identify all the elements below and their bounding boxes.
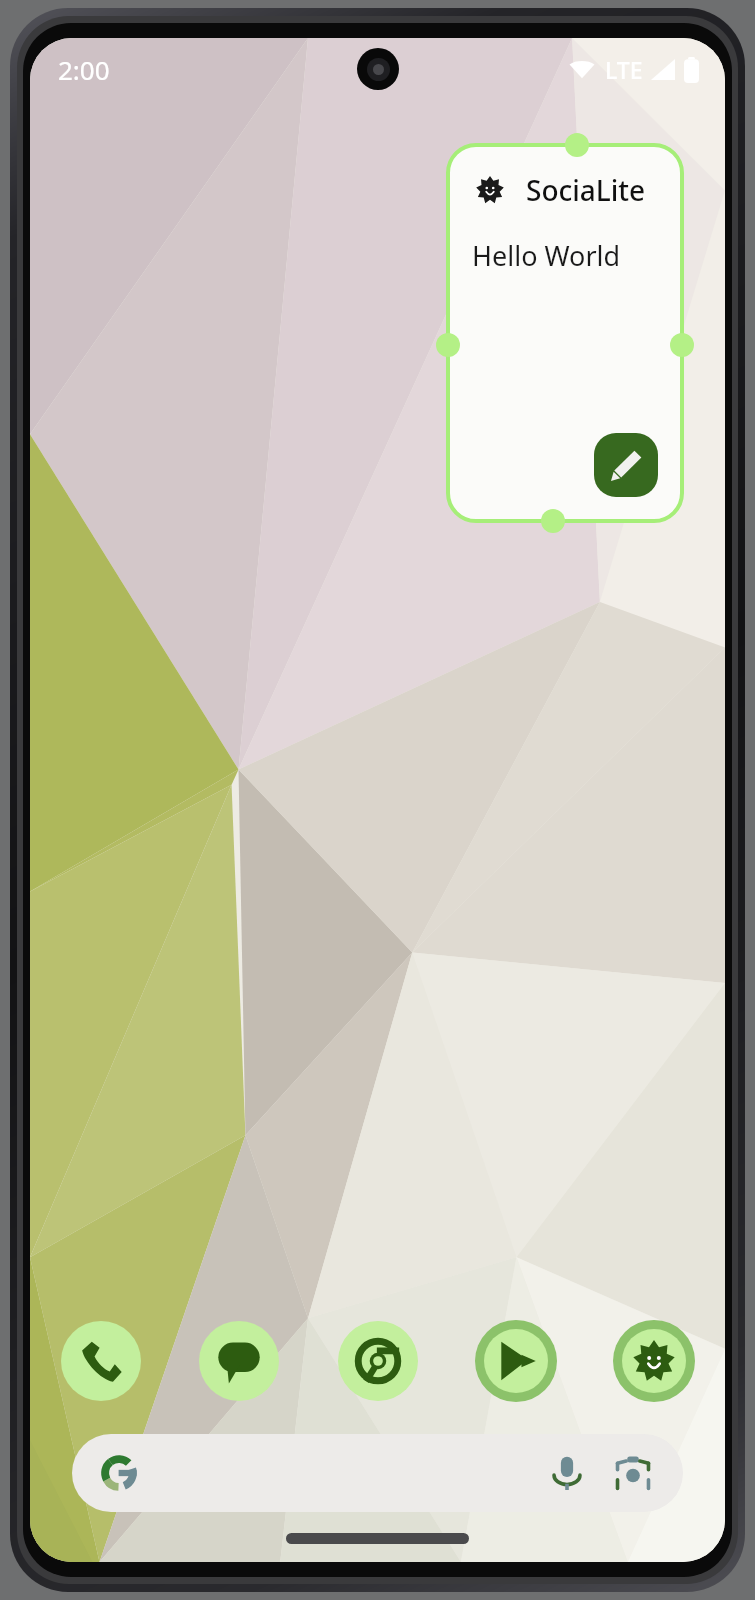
staticText: LTE <box>605 54 643 85</box>
button[interactable]: Voice search <box>72 1434 683 1512</box>
button[interactable]: Google Lens <box>607 1447 659 1499</box>
button[interactable]: Compose <box>594 433 658 497</box>
button[interactable]: SociaLite <box>611 1318 697 1404</box>
button[interactable]: Play Store <box>473 1318 559 1404</box>
button[interactable]: Voice search <box>541 1447 593 1499</box>
staticText: SociaLite <box>526 171 646 209</box>
button[interactable]: Messages <box>196 1318 282 1404</box>
staticText: 2:00 <box>58 52 110 87</box>
button[interactable]: Phone <box>58 1318 144 1404</box>
button[interactable]: SociaLite <box>448 145 682 521</box>
button[interactable]: Chrome <box>335 1318 421 1404</box>
staticText: Hello World <box>472 237 621 274</box>
